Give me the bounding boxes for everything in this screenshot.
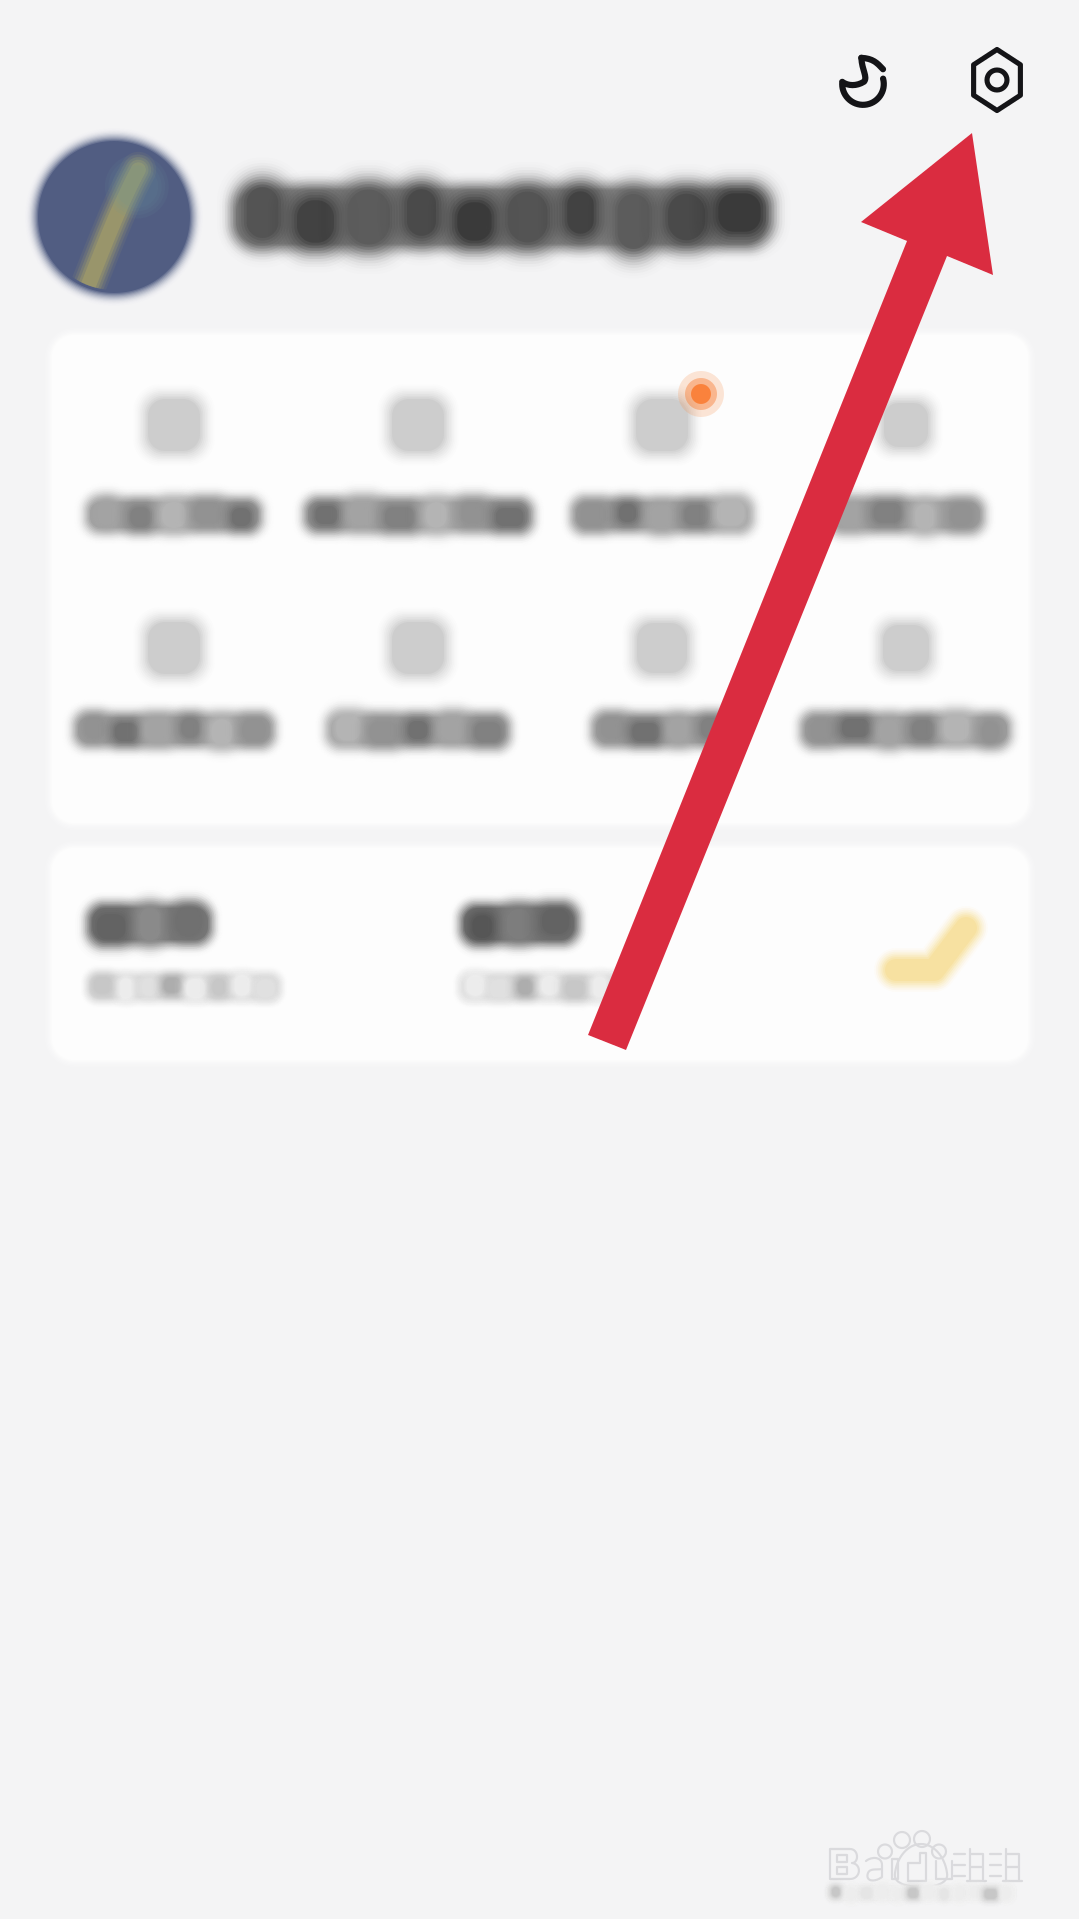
button[interactable]	[296, 370, 540, 570]
button[interactable]	[25, 114, 1036, 320]
button[interactable]	[540, 589, 784, 789]
button[interactable]	[784, 370, 1028, 570]
button[interactable]	[296, 589, 540, 789]
button[interactable]	[784, 589, 1028, 789]
button[interactable]: Night mode	[817, 34, 909, 126]
button[interactable]	[540, 370, 784, 570]
button[interactable]: Settings	[951, 34, 1043, 126]
button[interactable]	[449, 890, 649, 1030]
button[interactable]	[52, 589, 296, 789]
button[interactable]	[52, 370, 296, 570]
button[interactable]	[77, 890, 289, 1030]
